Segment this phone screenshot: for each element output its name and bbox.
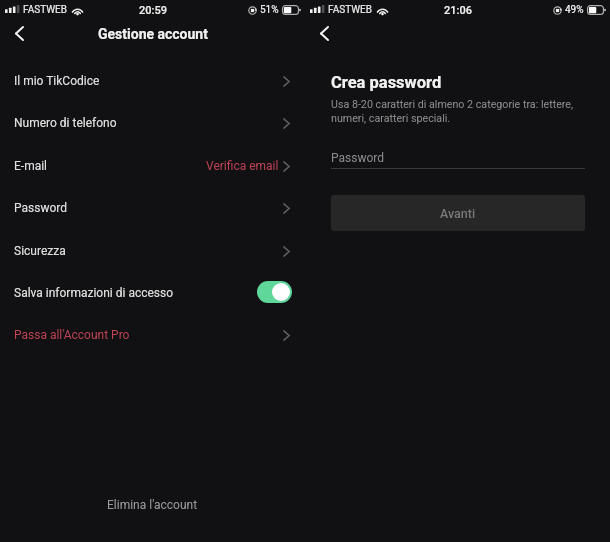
staticText: Password [331,151,385,165]
button[interactable]: Passa all'Account Pro [0,314,305,356]
staticText: FASTWEB [328,4,372,16]
button[interactable]: Sicurezza [0,230,305,272]
staticText: Numero di telefono [14,116,117,130]
button[interactable]: Back [0,20,39,47]
staticText: Avanti [440,206,476,221]
button[interactable]: Numero di telefono [0,102,305,144]
staticText: Il mio TikCodice [14,74,100,88]
button[interactable]: Salva informazioni di accesso [0,272,305,314]
staticText: E-mail [14,159,48,173]
staticText: Verifica email [206,159,279,173]
button[interactable]: Password [0,187,305,229]
staticText: Usa 8-20 caratteri di almeno 2 categorie… [331,98,585,124]
staticText: 51% [260,4,279,16]
button[interactable]: Back [304,20,344,47]
button[interactable]: Password [331,147,585,168]
staticText: Sicurezza [14,244,66,258]
button[interactable]: E-mail [0,145,305,187]
staticText: Passa all'Account Pro [14,328,130,342]
staticText: FASTWEB [23,4,67,16]
staticText: Elimina l'account [107,498,198,512]
button[interactable]: Avanti [331,195,585,231]
button[interactable]: Toggle [257,281,292,303]
button[interactable]: Il mio TikCodice [0,60,305,102]
staticText: 49% [565,4,584,16]
staticText: Gestione account [98,26,208,42]
staticText: 20:59 [139,4,167,17]
staticText: Password [14,201,68,215]
staticText: 21:06 [444,4,472,17]
button[interactable]: Elimina l'account [0,486,305,524]
staticText: Salva informazioni di accesso [14,286,174,300]
staticText: Crea password [331,73,442,92]
